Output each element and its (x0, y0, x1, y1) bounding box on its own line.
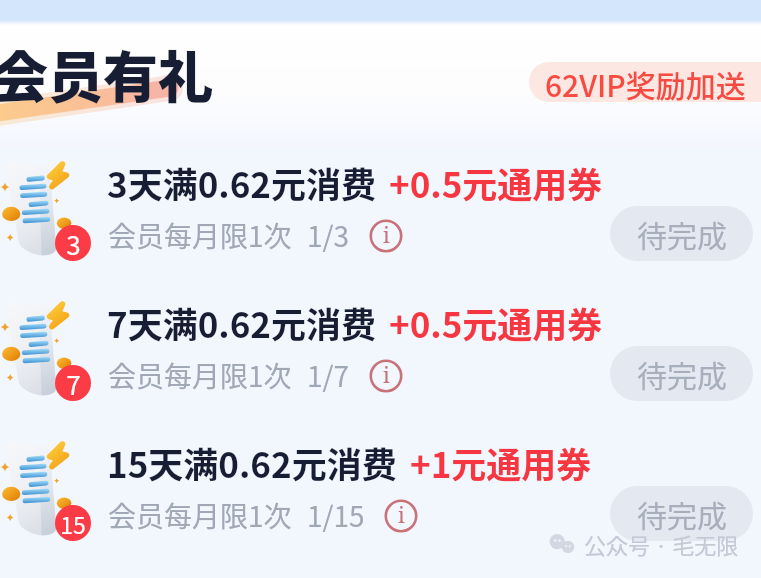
staticText: 会员每月限1次 (108, 215, 292, 256)
staticText: +0.5元通用券 (389, 297, 603, 348)
staticText: 待完成 (637, 492, 727, 535)
staticText: 15 (60, 507, 86, 540)
staticText: 会员每月限1次 (108, 495, 292, 536)
button[interactable]: 待完成 (610, 346, 753, 401)
staticText: +1元通用券 (410, 437, 592, 488)
staticText: 1/15 (307, 495, 365, 536)
staticText: i (383, 221, 390, 250)
staticText: 7 (66, 365, 81, 401)
other: Reward receipt, 7 days (0, 294, 104, 404)
staticText: +0.5元通用券 (389, 157, 603, 208)
button[interactable]: 62VIP奖励加送 (529, 62, 761, 102)
other: Reward receipt, 3 days (0, 154, 104, 264)
staticText: 公众号 · 毛无限 (584, 528, 739, 560)
staticText: 1/3 (307, 215, 350, 256)
button[interactable]: Info (369, 359, 403, 393)
staticText: i (398, 501, 405, 530)
staticText: 62VIP奖励加送 (545, 62, 746, 102)
button[interactable]: Info (369, 219, 403, 253)
staticText: 会员有礼 (0, 33, 214, 113)
staticText: 3 (66, 225, 81, 261)
button[interactable]: 待完成 (610, 206, 753, 261)
staticText: 1/7 (307, 355, 350, 396)
staticText: 3天满0.62元消费 (107, 157, 376, 208)
button[interactable]: 待完成 (610, 486, 753, 541)
staticText: 15天满0.62元消费 (107, 437, 397, 488)
staticText: 待完成 (637, 212, 727, 255)
other: Reward receipt, 15 days (0, 434, 104, 544)
staticText: 会员每月限1次 (108, 355, 292, 396)
staticText: 7天满0.62元消费 (107, 297, 376, 348)
staticText: i (383, 361, 390, 390)
button[interactable]: Reward receipt, 15 days (0, 420, 761, 560)
button[interactable]: Info (384, 499, 418, 533)
staticText: 待完成 (637, 352, 727, 395)
button[interactable]: Reward receipt, 7 days (0, 280, 761, 420)
button[interactable]: Reward receipt, 3 days (0, 140, 761, 280)
